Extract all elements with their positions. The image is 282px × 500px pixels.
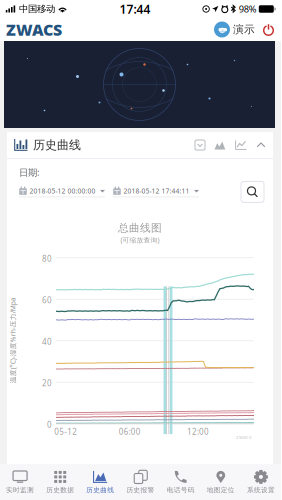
- staticText: 17:44: [119, 1, 150, 17]
- button[interactable]: 2018-05-12 00:00:00: [19, 186, 105, 197]
- button[interactable]: 退出登录: [262, 23, 275, 36]
- staticText: 历史报警: [126, 486, 154, 494]
- staticText: 历史曲线: [33, 138, 81, 152]
- staticText: zwacs: [236, 433, 252, 440]
- staticText: 0: [47, 419, 52, 430]
- button[interactable]: 选择测点: [195, 140, 205, 150]
- staticText: 06:00: [119, 426, 141, 437]
- button[interactable]: 折线图: [235, 140, 247, 150]
- staticText: 历史曲线: [86, 486, 114, 494]
- button[interactable]: 实时监测: [0, 464, 40, 500]
- staticText: 系统设置: [247, 486, 275, 494]
- staticText: 日期:: [19, 166, 40, 178]
- staticText: 20: [42, 378, 52, 388]
- staticText: 2018-05-12 17:44:11: [123, 186, 189, 195]
- button[interactable]: 查询: [241, 181, 264, 202]
- staticText: 总曲线图: [118, 221, 162, 234]
- button[interactable]: 2018-05-12 17:44:11: [113, 186, 199, 197]
- staticText: 05-12: [54, 426, 77, 437]
- button[interactable]: 历史报警: [120, 464, 160, 500]
- button[interactable]: 系统设置: [241, 464, 281, 500]
- button[interactable]: 电话号码: [161, 464, 201, 500]
- button[interactable]: 云: [214, 21, 255, 37]
- button[interactable]: 地图定位: [201, 464, 241, 500]
- staticText: (可缩放查询): [120, 235, 159, 244]
- staticText: ZWACS: [6, 19, 62, 40]
- staticText: 60: [42, 295, 52, 305]
- staticText: 地图定位: [207, 486, 235, 494]
- staticText: 40: [42, 336, 52, 347]
- staticText: 80: [42, 253, 52, 264]
- button[interactable]: 面积图: [214, 140, 226, 150]
- staticText: 2018-05-12 00:00:00: [29, 186, 95, 195]
- staticText: 中国移动: [19, 3, 55, 15]
- button[interactable]: 收起: [256, 140, 266, 150]
- button[interactable]: 历史数据: [40, 464, 80, 500]
- staticText: 云: [220, 29, 225, 35]
- staticText: 温度(°C)-湿度%rh-压力/Mpa: [0, 336, 56, 345]
- staticText: 12:00: [187, 426, 209, 437]
- button[interactable]: 历史曲线: [80, 464, 120, 500]
- staticText: 演示: [233, 23, 255, 36]
- staticText: 历史数据: [46, 486, 74, 494]
- staticText: 98%: [239, 3, 257, 15]
- staticText: 电话号码: [167, 486, 195, 494]
- staticText: 实时监测: [6, 486, 34, 494]
